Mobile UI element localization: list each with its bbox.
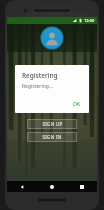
- button[interactable]: SIGN UP: [27, 119, 77, 129]
- staticText: OK: [73, 101, 81, 108]
- staticText: 12:00: [84, 18, 95, 23]
- button[interactable]: SIGN IN: [27, 132, 77, 142]
- button[interactable]: OK: [69, 99, 85, 110]
- button[interactable]: Home: [37, 181, 67, 192]
- staticText: Registering...: [22, 83, 53, 90]
- staticText: SIGN UP: [42, 121, 63, 127]
- button[interactable]: Back: [7, 181, 37, 192]
- staticText: Registering: [22, 71, 58, 80]
- other: Profile avatar: [41, 27, 63, 49]
- staticText: SIGN IN: [42, 134, 62, 140]
- button[interactable]: Recent apps: [67, 181, 97, 192]
